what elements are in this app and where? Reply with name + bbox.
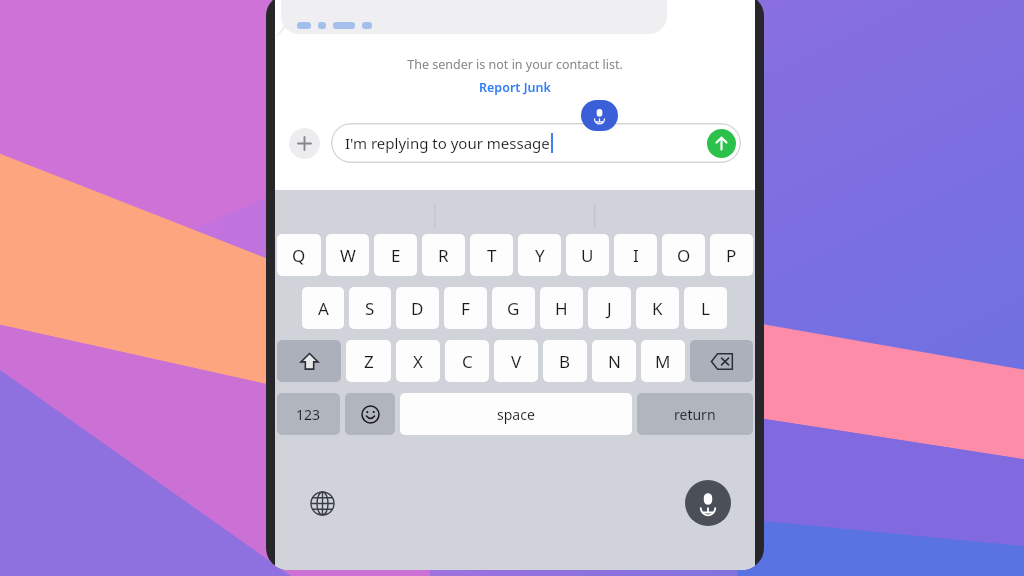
- button[interactable]: T: [470, 234, 513, 276]
- button[interactable]: X: [396, 340, 440, 382]
- staticText: G: [507, 297, 520, 320]
- staticText: Y: [535, 244, 545, 267]
- button[interactable]: return: [637, 393, 753, 435]
- button[interactable]: V: [494, 340, 538, 382]
- button[interactable]: B: [543, 340, 587, 382]
- staticText: X: [413, 350, 423, 373]
- button[interactable]: Emoji: [345, 393, 395, 435]
- button[interactable]: Q: [277, 234, 321, 276]
- staticText: M: [655, 350, 671, 373]
- button[interactable]: Voice input: [685, 480, 731, 526]
- staticText: N: [608, 350, 621, 373]
- staticText: K: [652, 297, 663, 320]
- button[interactable]: H: [540, 287, 583, 329]
- staticText: Report Junk: [479, 79, 551, 96]
- button[interactable]: L: [684, 287, 727, 329]
- button[interactable]: F: [444, 287, 487, 329]
- button[interactable]: space: [400, 393, 632, 435]
- button[interactable]: Report Junk: [479, 79, 551, 96]
- button[interactable]: K: [636, 287, 679, 329]
- staticText: W: [340, 244, 356, 267]
- button[interactable]: J: [588, 287, 631, 329]
- button[interactable]: P: [710, 234, 753, 276]
- staticText: return: [674, 405, 716, 424]
- staticText: 123: [296, 405, 321, 424]
- button[interactable]: O: [662, 234, 705, 276]
- button[interactable]: M: [641, 340, 685, 382]
- staticText: U: [581, 244, 594, 267]
- button[interactable]: C: [445, 340, 489, 382]
- staticText: F: [461, 297, 470, 320]
- button[interactable]: W: [326, 234, 369, 276]
- staticText: R: [438, 244, 449, 267]
- staticText: V: [511, 350, 522, 373]
- button[interactable]: U: [566, 234, 609, 276]
- button[interactable]: D: [396, 287, 439, 329]
- button[interactable]: I'm replying to your message: [331, 123, 741, 163]
- staticText: I: [633, 244, 639, 267]
- staticText: T: [487, 244, 497, 267]
- button[interactable]: Z: [346, 340, 391, 382]
- staticText: E: [391, 244, 401, 267]
- button[interactable]: E: [374, 234, 417, 276]
- staticText: P: [726, 244, 737, 267]
- staticText: Q: [292, 244, 306, 267]
- staticText: L: [701, 297, 710, 320]
- button[interactable]: G: [492, 287, 535, 329]
- button[interactable]: Shift: [277, 340, 341, 382]
- staticText: A: [318, 297, 329, 320]
- staticText: S: [365, 297, 375, 320]
- button[interactable]: Send: [707, 129, 736, 158]
- staticText: C: [462, 350, 473, 373]
- button[interactable]: R: [422, 234, 465, 276]
- button[interactable]: Backspace: [690, 340, 753, 382]
- staticText: The sender is not in your contact list.: [407, 56, 623, 73]
- button[interactable]: Change keyboard: [307, 488, 337, 518]
- button[interactable]: Dictate: [581, 100, 618, 131]
- staticText: space: [497, 405, 535, 424]
- staticText: D: [411, 297, 424, 320]
- button[interactable]: 123: [277, 393, 340, 435]
- button[interactable]: Add attachment: [289, 128, 320, 159]
- button[interactable]: N: [592, 340, 636, 382]
- staticText: Z: [364, 350, 374, 373]
- staticText: H: [555, 297, 568, 320]
- button[interactable]: I: [614, 234, 657, 276]
- staticText: B: [559, 350, 571, 373]
- staticText: O: [677, 244, 691, 267]
- button[interactable]: A: [302, 287, 344, 329]
- staticText: J: [607, 297, 612, 320]
- staticText: I'm replying to your message: [345, 133, 550, 153]
- button[interactable]: S: [349, 287, 391, 329]
- button[interactable]: Y: [518, 234, 561, 276]
